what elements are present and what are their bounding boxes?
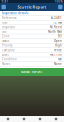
- staticText: 12 Mar: [53, 21, 62, 24]
- staticText: A-2481: [51, 16, 62, 20]
- button[interactable]: Tab: [16, 116, 32, 122]
- button[interactable]: Tab: [32, 116, 48, 122]
- staticText: 100%: [54, 0, 62, 3]
- staticText: Asset: [2, 53, 9, 56]
- button[interactable]: SUBMIT REPORT: [0, 68, 64, 76]
- staticText: Fence: [54, 48, 62, 52]
- staticText: Reference: [2, 16, 17, 20]
- staticText: North Yard: [48, 30, 62, 33]
- staticText: Site: [2, 30, 7, 33]
- staticText: High: [55, 44, 62, 47]
- button[interactable]: More: [58, 5, 62, 9]
- staticText: Date: [2, 21, 8, 24]
- staticText: Priority: [2, 44, 12, 47]
- staticText: Inspector: [2, 25, 15, 29]
- staticText: 9:41: [1, 0, 8, 3]
- staticText: Fair: [58, 57, 62, 61]
- staticText: B3: [58, 34, 62, 38]
- staticText: M. Reed: [50, 25, 62, 29]
- staticText: Inspection details: [2, 11, 28, 15]
- button[interactable]: Tab: [0, 116, 16, 122]
- staticText: Notes: [2, 62, 10, 66]
- staticText: SUBMIT REPORT: [21, 70, 43, 74]
- staticText: Open: [54, 39, 62, 43]
- button[interactable]: Tab: [48, 116, 64, 122]
- staticText: Condition: [2, 57, 17, 61]
- staticText: Zone: [2, 34, 10, 38]
- staticText: Status: [2, 39, 9, 43]
- staticText: FN-1190: [50, 53, 62, 56]
- staticText: Scuttle Report: [17, 4, 46, 10]
- staticText: Category: [2, 48, 14, 52]
- button[interactable]: Back: [1, 5, 6, 9]
- staticText: None: [54, 62, 62, 66]
